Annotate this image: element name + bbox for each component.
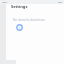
staticText: No items to show here: [13, 18, 45, 22]
button[interactable]: Refresh: [16, 24, 23, 31]
button[interactable]: No items to show here: [13, 18, 45, 22]
button[interactable]: Settings: [11, 4, 28, 9]
staticText: Settings: [11, 4, 28, 9]
